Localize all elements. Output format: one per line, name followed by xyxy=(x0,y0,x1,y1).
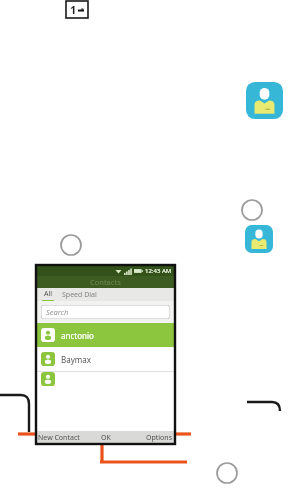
button[interactable]: New Contact xyxy=(36,433,88,443)
staticText: Contacts xyxy=(90,277,121,287)
button[interactable]: Search xyxy=(41,305,170,319)
button[interactable] xyxy=(36,372,175,386)
staticText: All xyxy=(44,289,53,299)
staticText: Search xyxy=(46,307,69,317)
button[interactable]: Options xyxy=(124,433,175,443)
button[interactable]: Key 1 xyxy=(66,1,88,18)
staticText: 1 xyxy=(70,2,77,17)
staticText: Speed Dial xyxy=(62,290,97,300)
button[interactable]: OK xyxy=(88,433,124,443)
staticText: Baymax xyxy=(61,354,91,365)
staticText: anctonio xyxy=(61,330,94,341)
staticText: OK xyxy=(101,433,111,443)
staticText: Options xyxy=(146,433,173,443)
button[interactable]: Speed Dial xyxy=(62,290,97,300)
button[interactable]: Contacts app icon xyxy=(245,225,273,253)
button[interactable]: All xyxy=(42,289,54,301)
button[interactable]: Contacts app icon xyxy=(246,82,283,119)
button[interactable]: Baymax xyxy=(36,347,175,371)
button[interactable]: anctonio xyxy=(36,323,175,347)
staticText: New Contact xyxy=(38,433,80,443)
staticText: 12:43 AM xyxy=(145,267,172,275)
